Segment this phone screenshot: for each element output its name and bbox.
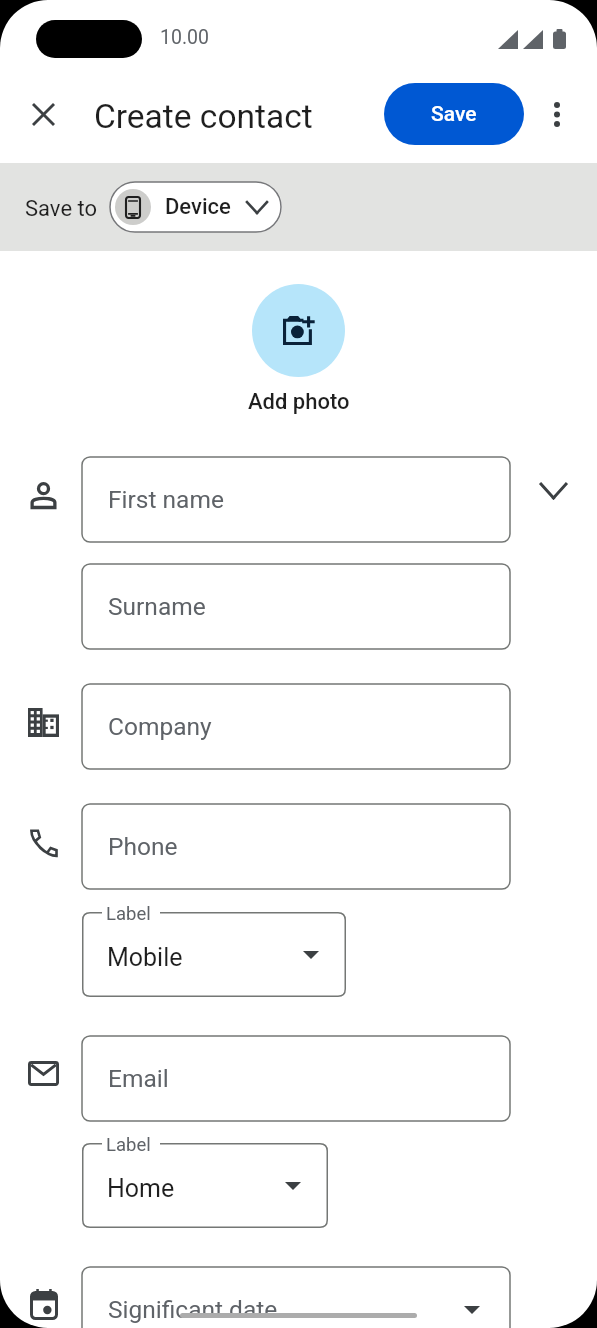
button[interactable]: Phone	[82, 804, 510, 889]
staticText: Significant date	[108, 1295, 278, 1324]
button[interactable]: Label	[82, 912, 346, 997]
staticText: Save to	[25, 196, 98, 222]
staticText: Label	[106, 1134, 151, 1156]
staticText: Company	[108, 712, 212, 741]
staticText: Save	[431, 102, 477, 127]
staticText: Label	[106, 903, 151, 925]
staticText: Add photo	[248, 389, 350, 415]
staticText: First name	[108, 485, 224, 514]
button[interactable]: Significant date	[82, 1267, 510, 1328]
staticText: Surname	[108, 592, 206, 621]
staticText: 10.00	[160, 26, 209, 49]
staticText: Phone	[108, 832, 178, 861]
button[interactable]: Email	[82, 1036, 510, 1121]
button[interactable]: Add photo	[252, 284, 345, 377]
button[interactable]: More options	[533, 90, 581, 138]
button[interactable]: Device	[110, 182, 282, 232]
button[interactable]: Label	[82, 1143, 328, 1228]
button[interactable]: Save	[384, 83, 524, 145]
staticText: Create contact	[94, 97, 313, 136]
button[interactable]: Company	[82, 684, 510, 769]
button[interactable]: First name	[82, 457, 510, 542]
staticText: Device	[165, 194, 231, 220]
button[interactable]: Expand name fields	[527, 465, 579, 517]
button[interactable]: Close	[15, 86, 72, 143]
staticText: Home	[107, 1174, 175, 1203]
button[interactable]: Surname	[82, 564, 510, 649]
staticText: Email	[108, 1064, 169, 1093]
staticText: Mobile	[107, 943, 183, 972]
